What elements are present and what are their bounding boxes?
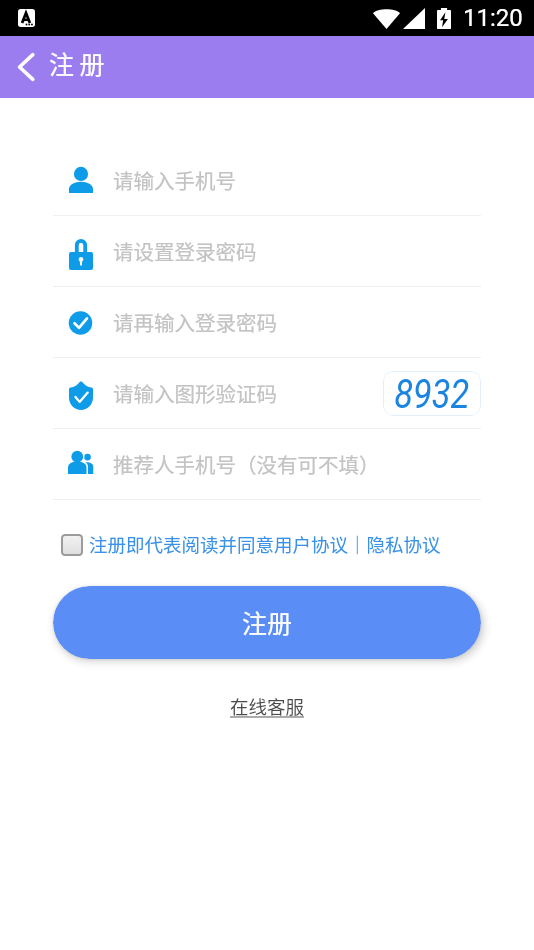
button[interactable]: 请输入手机号: [53, 145, 481, 215]
button[interactable]: 请设置登录密码: [53, 216, 481, 286]
button[interactable]: 注册即代表阅读并同意用户协议｜隐私协议: [53, 531, 481, 558]
staticText: 注 册: [49, 45, 105, 81]
button[interactable]: 注册: [53, 586, 481, 659]
staticText: 注册: [242, 604, 293, 640]
button[interactable]: 请再输入登录密码: [53, 287, 481, 357]
button[interactable]: 返回: [0, 41, 52, 93]
button[interactable]: 推荐人手机号（没有可不填）: [53, 429, 481, 499]
staticText: 推荐人手机号（没有可不填）: [113, 449, 380, 479]
staticText: 11:20: [463, 4, 523, 32]
staticText: 请设置登录密码: [113, 236, 257, 266]
button[interactable]: 图形验证码: [383, 371, 481, 416]
staticText: 8932: [394, 371, 470, 416]
staticText: 注册即代表阅读并同意用户协议｜隐私协议: [89, 531, 441, 558]
button[interactable]: 请输入图形验证码: [53, 358, 481, 428]
button[interactable]: 在线客服: [230, 693, 305, 720]
staticText: 请再输入登录密码: [113, 307, 277, 337]
staticText: 请输入手机号: [113, 165, 236, 195]
staticText: 请输入图形验证码: [113, 378, 277, 408]
